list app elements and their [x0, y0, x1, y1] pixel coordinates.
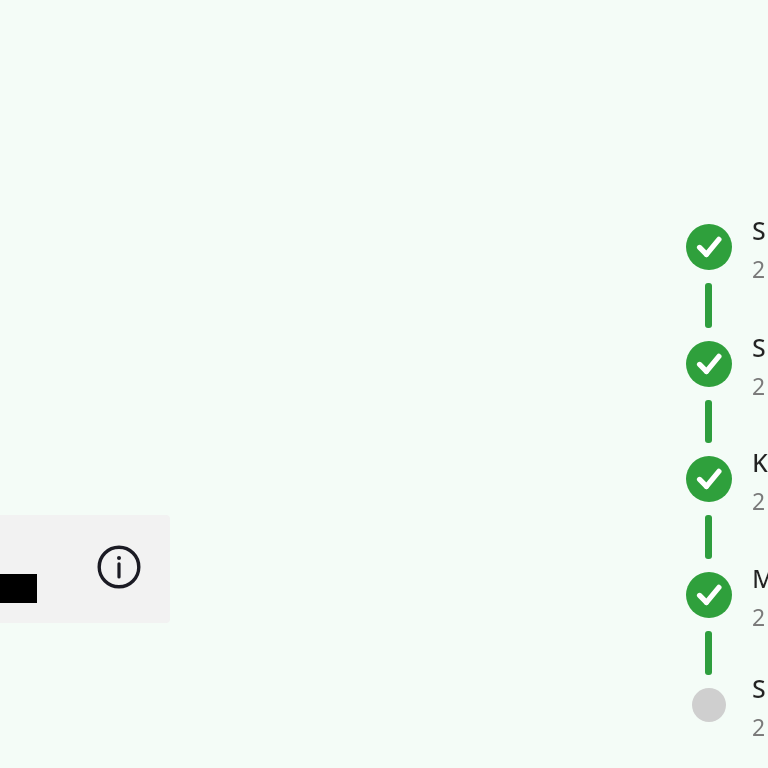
staticText: Sorted: [752, 330, 768, 364]
button[interactable]: Kitted: [686, 445, 768, 513]
button[interactable]: Information: [96, 544, 142, 590]
button[interactable]: Shipped: [686, 213, 768, 281]
button[interactable]: Moved: [686, 561, 768, 629]
staticText: Moved: [752, 561, 768, 595]
staticText: 2024: [752, 253, 768, 281]
button[interactable]: Sorted: [686, 330, 768, 398]
button[interactable]: Sealed: [692, 671, 768, 739]
staticText: 2024: [752, 485, 768, 513]
button[interactable]: Information: [0, 515, 170, 623]
staticText: Shipped: [752, 213, 768, 247]
staticText: 2024: [752, 601, 768, 629]
staticText: 2024: [752, 370, 768, 398]
staticText: Kitted: [752, 445, 768, 479]
staticText: Sealed: [752, 671, 768, 705]
staticText: 2024: [752, 711, 768, 739]
